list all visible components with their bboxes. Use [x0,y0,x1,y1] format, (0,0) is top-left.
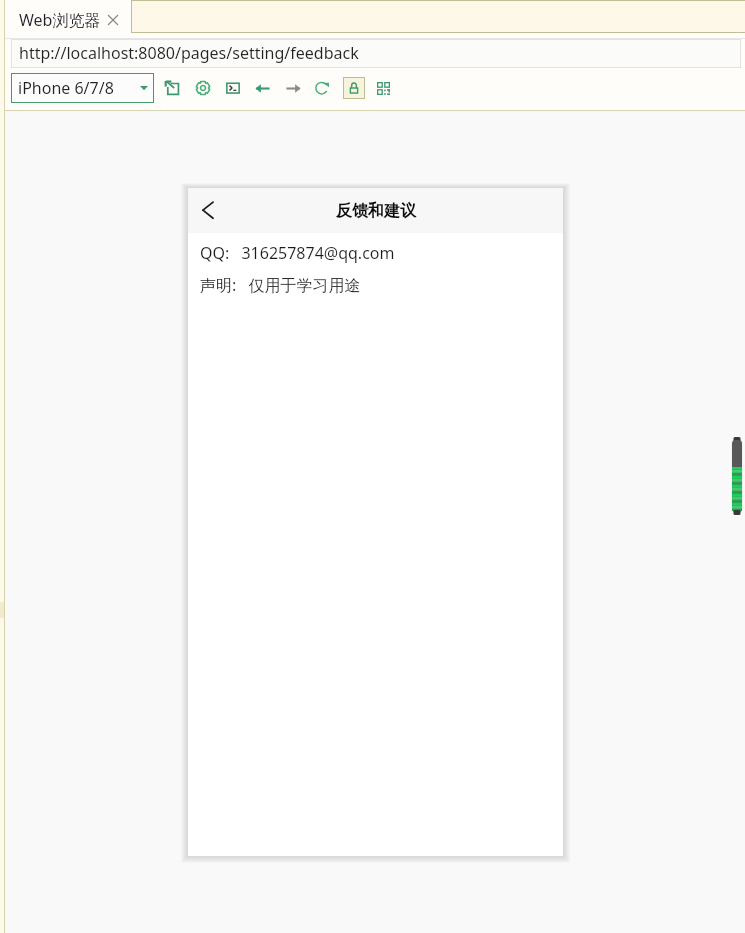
button[interactable]: Toggle inspect [343,77,365,99]
button[interactable]: Close tab [106,13,120,27]
button[interactable]: Reload [314,80,330,96]
button[interactable]: Scroll position [730,436,745,518]
staticText: http://localhost:8080/pages/setting/feed… [19,42,359,64]
button[interactable]: Console [225,80,241,96]
staticText: iPhone 6/7/8 [18,77,114,99]
button[interactable]: Back [254,80,270,96]
button[interactable]: Web浏览器 [5,0,131,39]
button[interactable]: Open in new window [164,80,180,96]
staticText: Web浏览器 [19,9,101,31]
button[interactable]: Settings [195,80,211,96]
staticText: 声明: 仅用于学习用途 [200,274,361,296]
button[interactable]: QR code [375,80,391,96]
staticText: 反馈和建议 [336,201,416,221]
button[interactable]: Forward [285,80,301,96]
staticText: QQ: 316257874@qq.com [200,242,395,264]
button[interactable]: Back [195,197,221,223]
button[interactable]: iPhone 6/7/8 [11,73,154,103]
button[interactable]: http://localhost:8080/pages/setting/feed… [11,39,741,68]
